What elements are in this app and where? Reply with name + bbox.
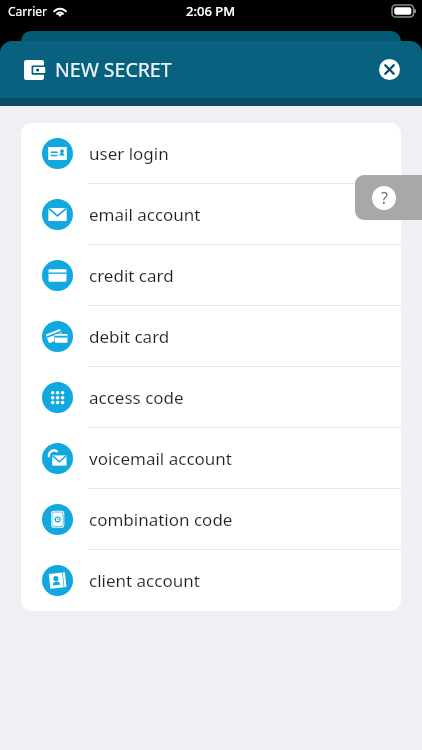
staticText: voicemail account [89, 447, 232, 470]
staticText: credit card [89, 264, 174, 287]
staticText: NEW SECRET [55, 56, 172, 83]
staticText: combination code [89, 508, 233, 531]
button[interactable]: debit card [21, 306, 401, 367]
staticText: debit card [89, 325, 170, 348]
button[interactable]: Close [379, 59, 400, 80]
staticText: access code [89, 386, 184, 409]
staticText: email account [89, 203, 201, 226]
staticText: 2:06 PM [186, 2, 236, 20]
button[interactable]: client account [21, 550, 401, 611]
staticText: client account [89, 569, 200, 592]
button[interactable]: Help [355, 175, 422, 220]
button[interactable]: access code [21, 367, 401, 428]
staticText: Carrier [8, 3, 48, 19]
button[interactable]: combination code [21, 489, 401, 550]
button[interactable]: email account [21, 184, 401, 245]
staticText: ? [381, 187, 388, 209]
button[interactable]: voicemail account [21, 428, 401, 489]
button[interactable]: credit card [21, 245, 401, 306]
staticText: user login [89, 142, 169, 165]
button[interactable]: user login [21, 123, 401, 184]
